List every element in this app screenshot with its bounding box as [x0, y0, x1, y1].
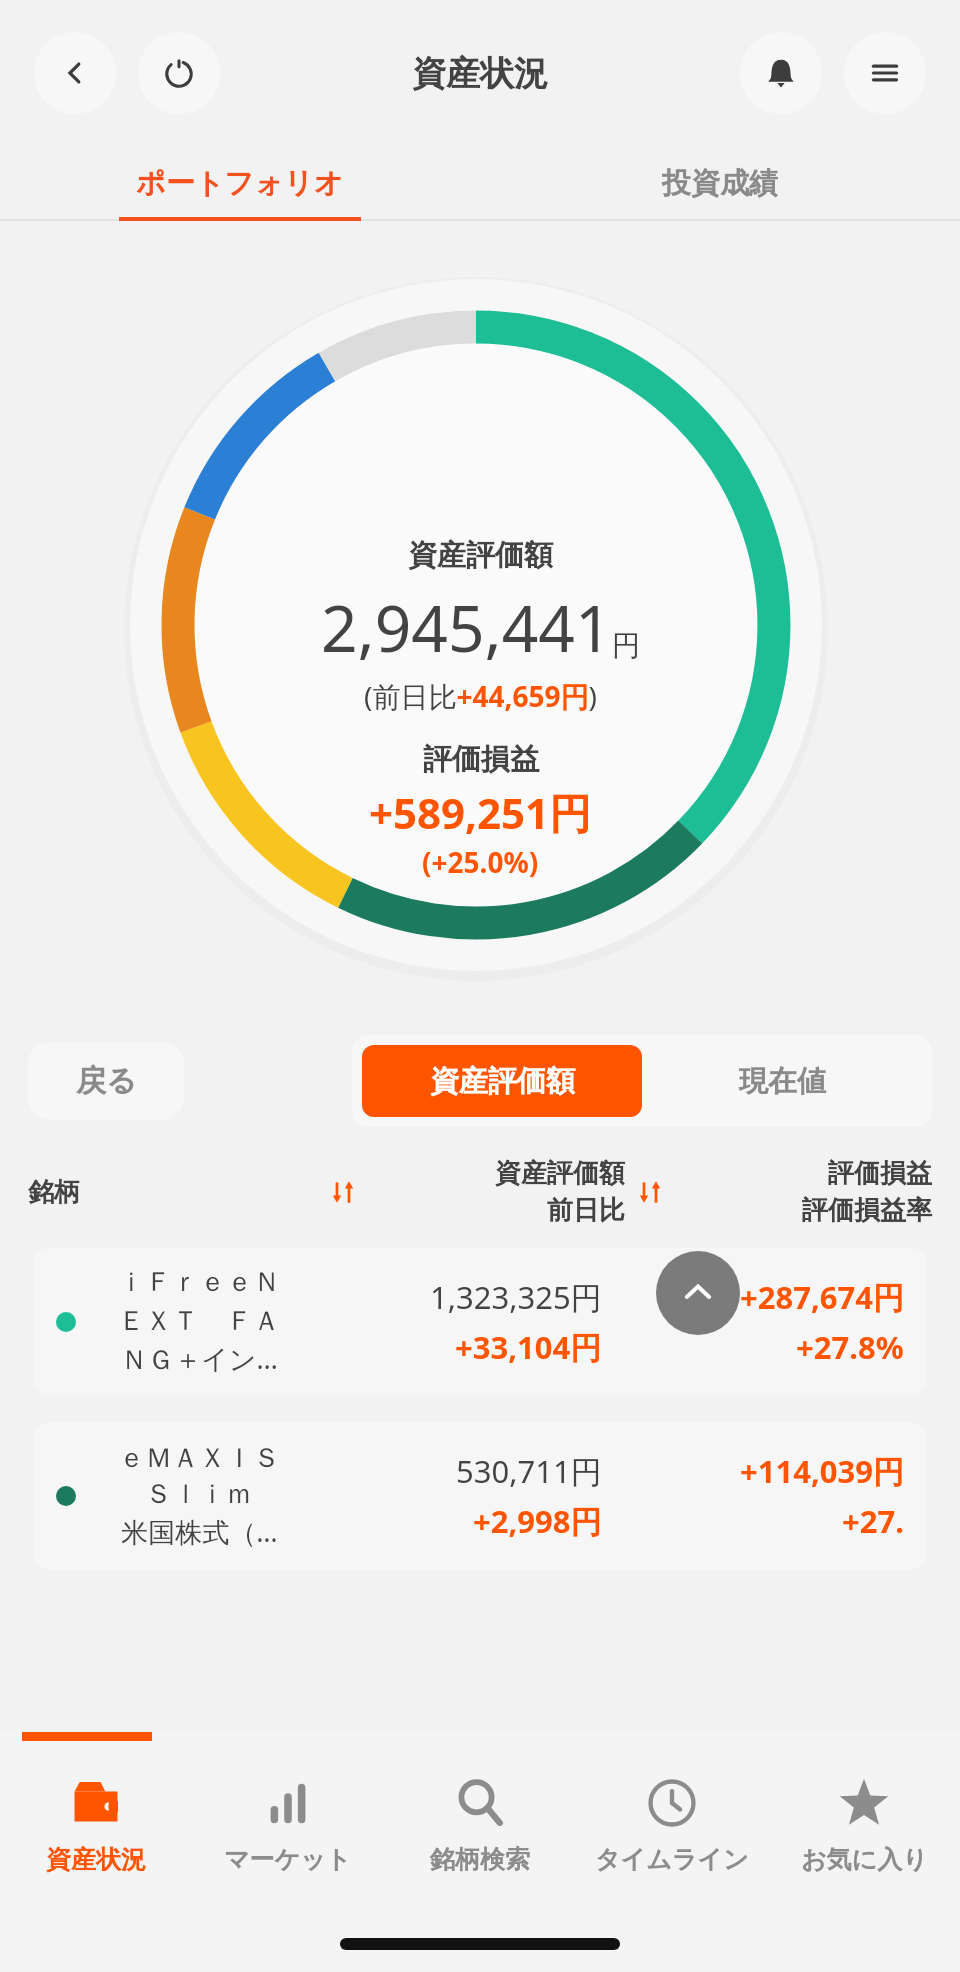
staticText: 資産状況: [412, 52, 548, 95]
staticText: +27.: [842, 1500, 904, 1542]
staticText: 評価損益: [423, 741, 539, 778]
staticText: (前日比+44,659円): [364, 677, 597, 715]
button[interactable]: マーケット: [192, 1732, 384, 1922]
staticText: +33,104円: [455, 1326, 602, 1368]
staticText: 資産状況: [46, 1844, 146, 1875]
staticText: 円: [612, 628, 640, 663]
staticText: ＮＧ＋イン…: [120, 1340, 278, 1377]
staticText: 530,711円: [456, 1450, 602, 1492]
button[interactable]: Notifications: [740, 32, 822, 114]
button[interactable]: ｉＦｒｅｅＮ: [34, 1248, 926, 1396]
button[interactable]: Scroll to top: [656, 1251, 740, 1335]
staticText: +2,998円: [473, 1500, 602, 1542]
staticText: 資産評価額: [495, 1157, 625, 1190]
button[interactable]: Sort: [328, 1177, 358, 1207]
staticText: +287,674円: [740, 1276, 904, 1318]
staticText: 米国株式（…: [121, 1513, 278, 1550]
staticText: ＥＸＴ ＦＡ: [118, 1301, 280, 1338]
staticText: 2,945,441: [321, 584, 612, 671]
button[interactable]: Back: [34, 32, 116, 114]
button[interactable]: 資産評価額: [362, 1045, 642, 1117]
staticText: 前日比: [547, 1194, 625, 1227]
staticText: タイムライン: [595, 1844, 749, 1875]
staticText: ポートフォリオ: [136, 165, 344, 202]
staticText: マーケット: [224, 1844, 352, 1875]
staticText: 評価損益率: [802, 1194, 932, 1227]
button[interactable]: タイムライン: [576, 1732, 768, 1922]
staticText: +114,039円: [740, 1450, 904, 1492]
button[interactable]: 投資成績: [480, 145, 960, 221]
staticText: 投資成績: [662, 165, 778, 202]
staticText: ｉＦｒｅｅＮ: [118, 1265, 280, 1299]
button[interactable]: 現在値: [642, 1045, 922, 1117]
staticText: Ｓｌｉｍ: [145, 1477, 253, 1511]
staticText: 1,323,325円: [430, 1276, 602, 1318]
button[interactable]: ｅＭＡＸＩＳ: [34, 1422, 926, 1570]
staticText: +589,251円: [369, 784, 592, 841]
button[interactable]: Sort: [635, 1177, 665, 1207]
button[interactable]: 戻る: [28, 1042, 184, 1120]
button[interactable]: Menu: [844, 32, 926, 114]
staticText: 銘柄検索: [430, 1844, 530, 1875]
staticText: 資産評価額: [430, 1063, 575, 1100]
staticText: +27.8%: [796, 1326, 904, 1368]
staticText: 評価損益: [828, 1157, 932, 1190]
button[interactable]: Refresh: [138, 32, 220, 114]
button[interactable]: お気に入り: [768, 1732, 960, 1922]
button[interactable]: 銘柄検索: [384, 1732, 576, 1922]
staticText: ｅＭＡＸＩＳ: [118, 1441, 280, 1475]
staticText: 銘柄: [28, 1176, 80, 1209]
staticText: 戻る: [76, 1062, 137, 1100]
button[interactable]: ポートフォリオ: [0, 145, 480, 221]
button[interactable]: 資産状況: [0, 1732, 192, 1922]
staticText: (+25.0%): [422, 843, 539, 881]
staticText: お気に入り: [801, 1844, 928, 1875]
staticText: 資産評価額: [408, 537, 553, 574]
staticText: 現在値: [739, 1063, 826, 1100]
